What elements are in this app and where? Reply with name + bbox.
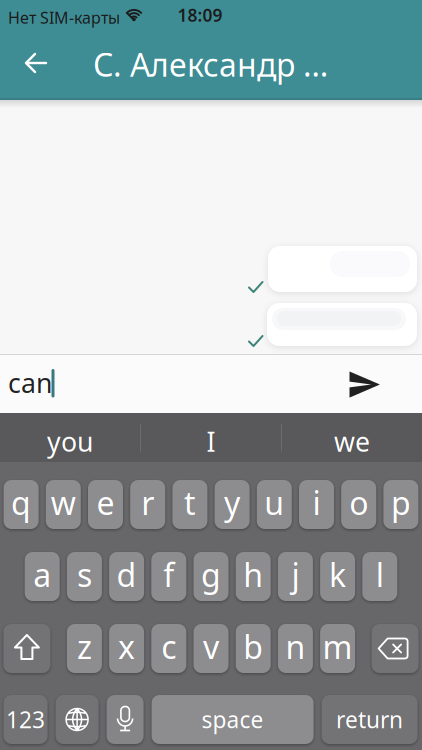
button[interactable]: z — [67, 624, 102, 673]
staticText: v — [203, 625, 219, 668]
staticText: b — [243, 625, 263, 668]
button[interactable]: I — [141, 413, 281, 462]
staticText: return — [336, 704, 403, 734]
staticText: x — [118, 625, 135, 668]
button[interactable]: a — [25, 552, 60, 601]
button[interactable]: w — [46, 480, 81, 529]
button[interactable]: p — [383, 480, 418, 529]
staticText: q — [11, 481, 31, 524]
staticText: c — [161, 625, 176, 668]
button[interactable]: r — [130, 480, 165, 529]
staticText: o — [349, 481, 368, 524]
staticText: l — [376, 553, 384, 596]
button[interactable]: s — [67, 552, 102, 601]
button[interactable] — [107, 695, 144, 744]
staticText: С. Александр … — [93, 43, 328, 85]
button[interactable]: d — [109, 552, 144, 601]
staticText: can — [8, 365, 52, 400]
button[interactable]: o — [341, 480, 376, 529]
button[interactable] — [3, 624, 50, 673]
button[interactable] — [372, 624, 419, 673]
button[interactable]: y — [215, 480, 250, 529]
staticText: u — [264, 481, 284, 524]
button[interactable]: v — [193, 624, 228, 673]
staticText: a — [33, 553, 51, 596]
button[interactable] — [13, 41, 57, 85]
staticText: 123 — [6, 704, 45, 734]
button[interactable]: b — [236, 624, 271, 673]
button[interactable]: l — [362, 552, 397, 601]
staticText: n — [285, 625, 305, 668]
button[interactable]: h — [236, 552, 271, 601]
button[interactable]: x — [109, 624, 144, 673]
button[interactable] — [56, 695, 99, 744]
staticText: p — [391, 481, 411, 524]
button[interactable]: f — [151, 552, 186, 601]
staticText: m — [323, 625, 353, 668]
staticText: t — [184, 481, 196, 524]
staticText: f — [163, 553, 174, 596]
button[interactable]: we — [282, 413, 422, 462]
button[interactable]: j — [278, 552, 313, 601]
staticText: j — [291, 553, 299, 596]
staticText: Нет SIM-карты — [8, 7, 120, 28]
staticText: g — [201, 553, 221, 596]
staticText: d — [117, 553, 137, 596]
button[interactable]: q — [4, 480, 39, 529]
staticText: h — [243, 553, 263, 596]
staticText: k — [329, 553, 346, 596]
staticText: you — [47, 424, 93, 459]
staticText: 18:09 — [177, 3, 222, 26]
button[interactable]: c — [151, 624, 186, 673]
button[interactable]: n — [278, 624, 313, 673]
staticText: w — [51, 481, 76, 524]
button[interactable] — [340, 361, 390, 409]
button[interactable]: return — [322, 695, 418, 744]
button[interactable]: m — [320, 624, 355, 673]
staticText: z — [77, 625, 92, 668]
staticText: r — [141, 481, 154, 524]
button[interactable]: e — [88, 480, 123, 529]
staticText: we — [334, 424, 370, 459]
button[interactable]: i — [299, 480, 334, 529]
staticText: i — [312, 481, 320, 524]
staticText: y — [224, 481, 240, 524]
button[interactable]: g — [193, 552, 228, 601]
button[interactable]: space — [152, 695, 314, 744]
staticText: e — [96, 481, 114, 524]
button[interactable]: 123 — [4, 695, 48, 744]
button[interactable]: you — [0, 413, 140, 462]
staticText: I — [206, 424, 215, 459]
button[interactable]: t — [172, 480, 207, 529]
staticText: space — [202, 704, 264, 734]
button[interactable]: k — [320, 552, 355, 601]
button[interactable]: u — [257, 480, 292, 529]
staticText: s — [77, 553, 92, 596]
